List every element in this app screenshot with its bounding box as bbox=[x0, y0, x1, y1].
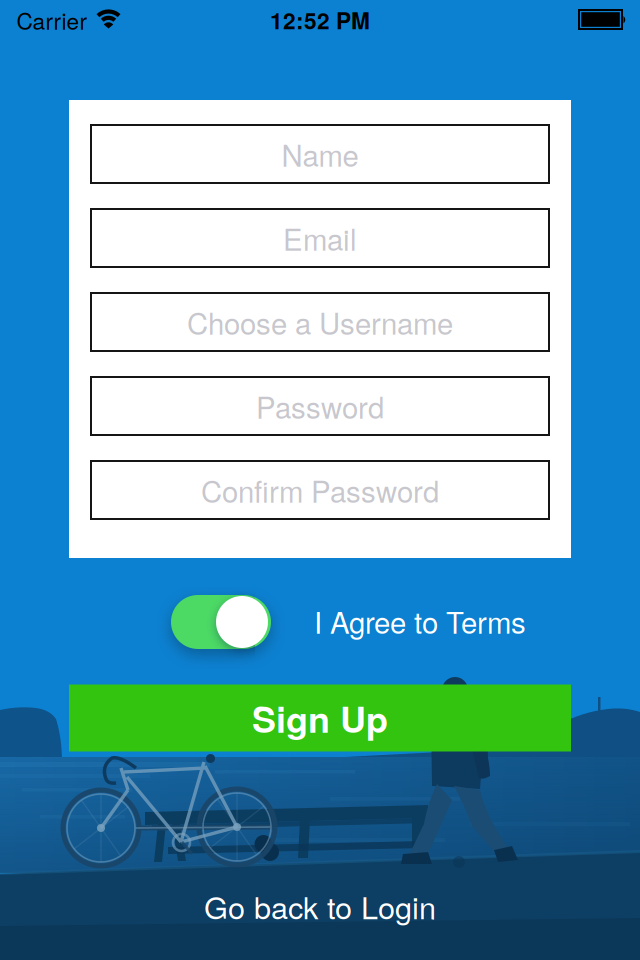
button[interactable]: Go back to Login bbox=[204, 885, 436, 927]
button[interactable]: Name bbox=[90, 124, 550, 184]
button[interactable]: Email bbox=[90, 208, 550, 268]
staticText: 12:52 PM bbox=[270, 4, 370, 36]
button[interactable]: Confirm Password bbox=[90, 460, 550, 520]
staticText: Confirm Password bbox=[201, 469, 439, 510]
staticText: Choose a Username bbox=[187, 301, 453, 342]
staticText: Name bbox=[281, 133, 358, 174]
staticText: Email bbox=[283, 217, 357, 258]
staticText: Go back to Login bbox=[204, 885, 436, 927]
button[interactable]: I Agree to Terms bbox=[171, 595, 271, 649]
button[interactable]: Choose a Username bbox=[90, 292, 550, 352]
staticText: Password bbox=[256, 385, 384, 426]
button[interactable]: Sign Up bbox=[69, 684, 571, 751]
button[interactable]: Password bbox=[90, 376, 550, 436]
staticText: Carrier bbox=[16, 4, 87, 36]
staticText: I Agree to Terms bbox=[314, 600, 526, 641]
staticText: Sign Up bbox=[252, 693, 388, 743]
